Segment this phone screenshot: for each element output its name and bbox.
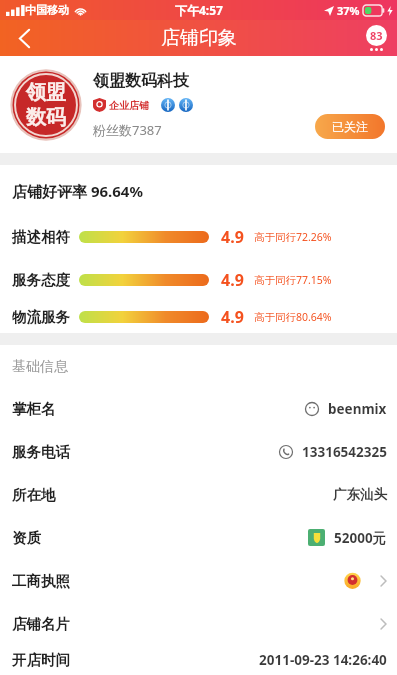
button[interactable]: 领盟 <box>0 56 397 153</box>
staticText: beenmix <box>328 400 387 418</box>
staticText: 高于同行72.26% <box>254 230 332 244</box>
button[interactable]: 服务电话 <box>0 430 397 473</box>
button[interactable]: 店铺名片 <box>0 602 397 645</box>
button[interactable]: Back <box>0 20 48 56</box>
staticText: 服务电话 <box>12 443 70 461</box>
staticText: 4.9 <box>221 226 244 248</box>
staticText: 下午4:57 <box>175 2 223 18</box>
staticText: 83 <box>370 28 383 43</box>
staticText: 服务态度 <box>12 271 70 289</box>
staticText: 物流服务 <box>12 308 70 326</box>
button[interactable]: 掌柜名 <box>0 387 397 430</box>
button[interactable]: 开店时间 <box>0 645 397 675</box>
staticText: 52000元 <box>334 529 387 547</box>
staticText: 开店时间 <box>12 651 70 669</box>
staticText: 领盟 <box>26 80 66 105</box>
staticText: 资质 <box>12 529 41 547</box>
button[interactable]: 已关注 <box>315 114 385 139</box>
staticText: 37% <box>337 3 360 18</box>
staticText: 高于同行80.64% <box>254 310 332 324</box>
staticText: 中国移动 <box>25 3 69 17</box>
staticText: 4.9 <box>221 306 244 328</box>
staticText: 13316542325 <box>302 443 387 461</box>
staticText: 店铺名片 <box>12 615 70 633</box>
button[interactable]: 工商执照 <box>0 559 397 602</box>
staticText: 高于同行77.15% <box>254 273 332 287</box>
button[interactable]: 资质 <box>0 516 397 559</box>
staticText: 4.9 <box>221 269 244 291</box>
staticText: 描述相符 <box>12 228 70 246</box>
staticText: 数码 <box>26 105 66 130</box>
staticText: 所在地 <box>12 486 56 504</box>
button[interactable]: More options <box>366 25 387 51</box>
staticText: 粉丝数7387 <box>93 121 162 139</box>
staticText: 领盟数码科技 <box>93 71 189 91</box>
button[interactable]: 所在地 <box>0 473 397 516</box>
staticText: 店铺印象 <box>161 26 237 50</box>
staticText: 工商执照 <box>12 572 70 590</box>
staticText: 基础信息 <box>12 358 68 376</box>
staticText: 已关注 <box>332 119 368 134</box>
staticText: 广东汕头 <box>333 486 387 503</box>
staticText: 2011-09-23 14:26:40 <box>259 651 387 669</box>
staticText: 企业店铺 <box>109 99 149 112</box>
staticText: 店铺好评率 96.64% <box>12 181 143 201</box>
staticText: 掌柜名 <box>12 400 56 418</box>
